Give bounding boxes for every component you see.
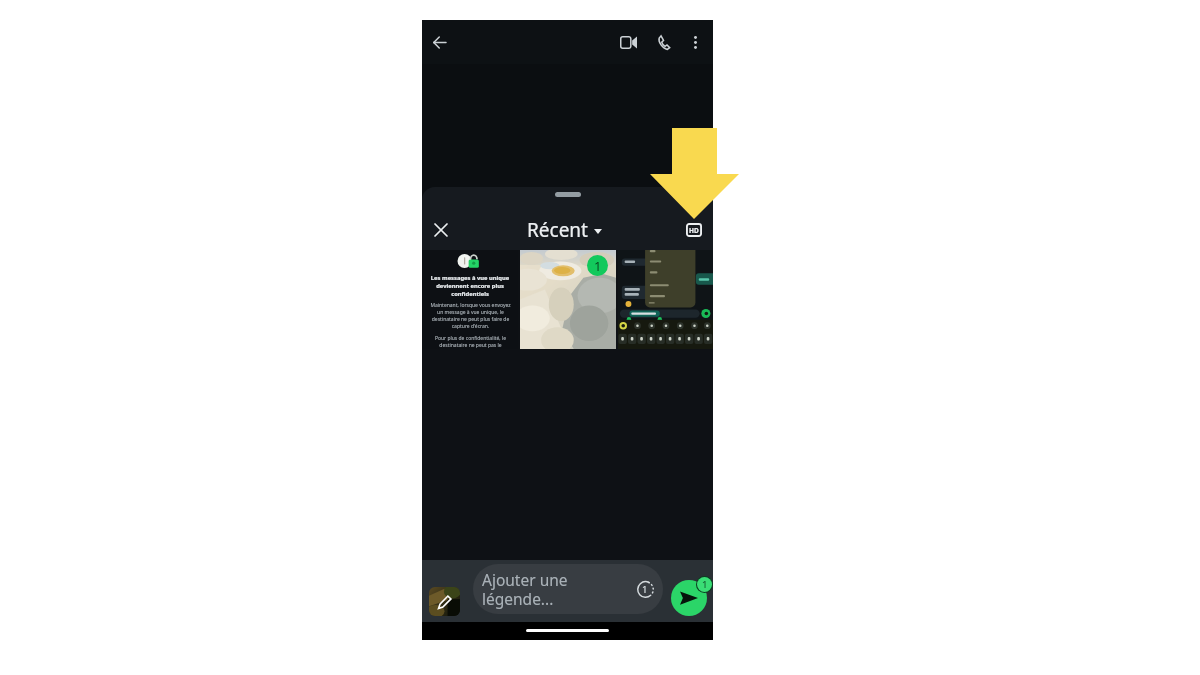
staticText: 1 (702, 578, 708, 591)
button[interactable]: Photo selected, 1 (520, 250, 616, 349)
staticText: 1 (594, 257, 602, 275)
staticText: Récent (527, 217, 588, 243)
button[interactable]: More options (680, 27, 710, 57)
staticText: Pour plus de confidentialité, le destina… (428, 335, 513, 349)
button[interactable]: Send (671, 580, 707, 616)
button[interactable]: Close (425, 214, 457, 246)
button[interactable]: Video call (609, 23, 647, 61)
button[interactable]: Screenshot, chat (618, 250, 713, 349)
button[interactable]: View once (633, 577, 657, 601)
staticText: Maintenant, lorsque vous envoyez un mess… (428, 302, 513, 330)
button[interactable]: HD quality (680, 216, 708, 244)
button[interactable]: Back (422, 25, 457, 60)
button[interactable]: Voice call (650, 27, 680, 57)
button[interactable]: Ajouter une légende... (473, 564, 663, 614)
staticText: Ajouter une légende... (482, 569, 602, 609)
staticText: 1 (642, 583, 648, 596)
staticText: Les messages à vue unique deviennent enc… (427, 274, 513, 298)
staticText: HD (689, 226, 699, 235)
button[interactable]: Screenshot, view once messages (422, 250, 518, 349)
button[interactable]: Edit (429, 587, 460, 616)
button[interactable]: Récent (523, 213, 606, 247)
